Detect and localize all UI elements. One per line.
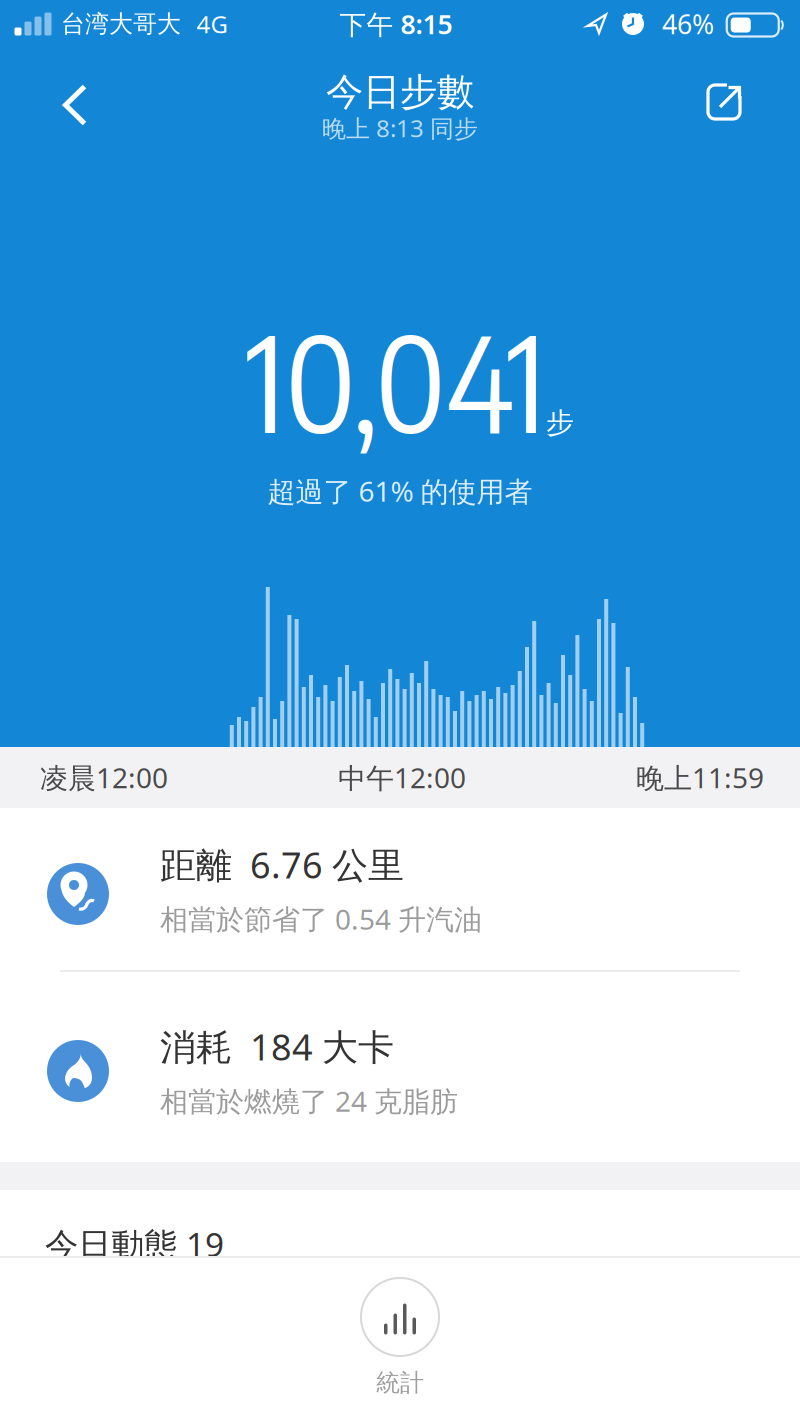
staticText: 晚上11:59 [636, 759, 764, 796]
staticText: 統計 [376, 1368, 424, 1397]
staticText: 相當於燃燒了 24 克脂肪 [160, 1082, 458, 1119]
button[interactable]: 距離 6.76 公里 [0, 808, 800, 970]
staticText: 台湾大哥大 [61, 9, 181, 39]
staticText: 距離 6.76 公里 [160, 840, 404, 888]
staticText: 晚上 8:13 同步 [322, 112, 478, 144]
staticText: 今日步數 [326, 69, 474, 115]
button[interactable] [50, 72, 99, 138]
staticText: 下午 8:15 [339, 6, 452, 42]
staticText: 中午12:00 [338, 759, 466, 796]
button[interactable] [696, 71, 752, 131]
staticText: 10,041 [246, 298, 546, 462]
staticText: 超過了 61% 的使用者 [267, 472, 532, 510]
staticText: 4G [196, 8, 227, 40]
button[interactable]: 消耗 184 大卡 [0, 981, 800, 1161]
staticText: 今日動態 19 [45, 1222, 224, 1266]
staticText: 消耗 184 大卡 [160, 1022, 394, 1070]
staticText: 46% [662, 6, 714, 42]
button[interactable]: 統計 [321, 1256, 479, 1397]
staticText: 相當於節省了 0.54 升汽油 [160, 900, 482, 937]
staticText: 步 [546, 406, 574, 440]
staticText: 凌晨12:00 [40, 759, 168, 796]
